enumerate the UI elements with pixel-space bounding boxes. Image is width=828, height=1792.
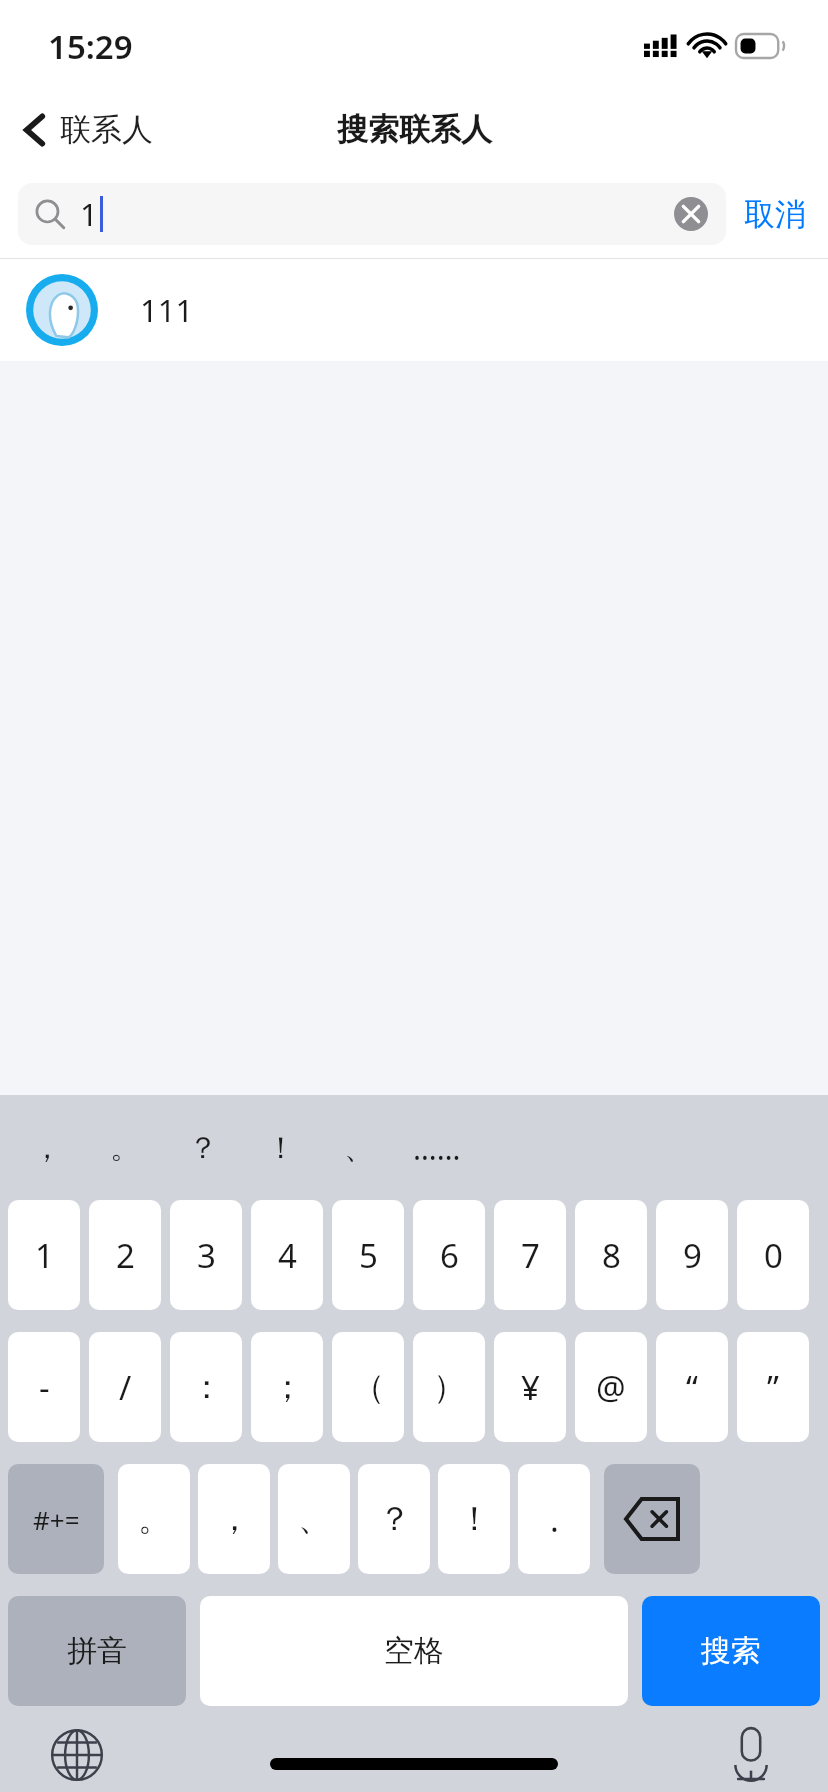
staticText: 3 xyxy=(197,1233,216,1278)
button[interactable]: 、 xyxy=(278,1464,350,1574)
button[interactable]: . xyxy=(518,1464,590,1574)
button[interactable]: 9 xyxy=(656,1200,728,1310)
button[interactable]: 。 xyxy=(118,1464,190,1574)
staticText: 取消 xyxy=(744,195,806,234)
staticText: ） xyxy=(433,1366,466,1408)
staticText: （ xyxy=(352,1366,385,1408)
button[interactable]: 4 xyxy=(251,1200,323,1310)
staticText: 9 xyxy=(683,1233,702,1278)
button[interactable]: ¥ xyxy=(494,1332,566,1442)
staticText: 7 xyxy=(521,1233,540,1278)
button[interactable]: 5 xyxy=(332,1200,404,1310)
staticText: 、 xyxy=(298,1498,331,1540)
staticText: 联系人 xyxy=(60,110,153,149)
staticText: 拼音 xyxy=(67,1632,127,1670)
button[interactable]: Clear text xyxy=(672,195,710,233)
staticText: @ xyxy=(596,1365,626,1410)
staticText: 。 xyxy=(138,1498,171,1540)
staticText: ¥ xyxy=(521,1365,540,1410)
button[interactable]: Switch keyboard xyxy=(46,1724,108,1786)
staticText: 5 xyxy=(359,1233,378,1278)
button[interactable]: - xyxy=(8,1332,80,1442)
button[interactable]: 拼音 xyxy=(8,1596,186,1706)
button[interactable]: 0 xyxy=(737,1200,809,1310)
button[interactable]: ， xyxy=(198,1464,270,1574)
button[interactable]: ？ xyxy=(358,1464,430,1574)
button[interactable]: 。 xyxy=(86,1104,164,1192)
button[interactable]: 8 xyxy=(575,1200,647,1310)
button[interactable]: 空格 xyxy=(200,1596,628,1706)
button[interactable]: ： xyxy=(170,1332,242,1442)
staticText: …… xyxy=(413,1128,461,1169)
button[interactable]: ！ xyxy=(438,1464,510,1574)
button[interactable]: 、 xyxy=(320,1104,398,1192)
staticText: 15:29 xyxy=(48,24,133,69)
staticText: ” xyxy=(767,1365,779,1410)
button[interactable]: 3 xyxy=(170,1200,242,1310)
button[interactable]: ？ xyxy=(164,1104,242,1192)
staticText: 搜索 xyxy=(701,1632,761,1670)
button[interactable]: ） xyxy=(413,1332,485,1442)
button[interactable]: / xyxy=(89,1332,161,1442)
staticText: . xyxy=(550,1497,559,1542)
button[interactable]: 111 xyxy=(0,259,828,361)
button[interactable]: 联系人 xyxy=(0,102,169,157)
staticText: ！ xyxy=(266,1129,296,1167)
staticText: ： xyxy=(190,1366,223,1408)
staticText: 8 xyxy=(602,1233,621,1278)
button[interactable]: 取消 xyxy=(726,187,810,242)
button[interactable]: 1 xyxy=(8,1200,80,1310)
staticText: 2 xyxy=(116,1233,135,1278)
staticText: ！ xyxy=(458,1498,491,1540)
button[interactable]: 1 xyxy=(18,183,726,245)
staticText: 1 xyxy=(35,1233,54,1278)
button[interactable]: “ xyxy=(656,1332,728,1442)
staticText: ， xyxy=(218,1498,251,1540)
staticText: ； xyxy=(271,1366,304,1408)
staticText: 空格 xyxy=(384,1632,444,1670)
button[interactable]: ” xyxy=(737,1332,809,1442)
staticText: 6 xyxy=(440,1233,459,1278)
staticText: 、 xyxy=(344,1129,374,1167)
button[interactable]: @ xyxy=(575,1332,647,1442)
staticText: / xyxy=(119,1365,132,1410)
staticText: 4 xyxy=(278,1233,297,1278)
button[interactable]: …… xyxy=(398,1104,476,1192)
staticText: 1 xyxy=(80,193,98,235)
button[interactable]: ； xyxy=(251,1332,323,1442)
button[interactable]: 2 xyxy=(89,1200,161,1310)
staticText: ， xyxy=(32,1129,62,1167)
button[interactable]: 搜索 xyxy=(642,1596,820,1706)
staticText: “ xyxy=(686,1365,698,1410)
button[interactable]: Voice input xyxy=(720,1724,782,1786)
button[interactable]: Backspace xyxy=(604,1464,700,1574)
staticText: 0 xyxy=(764,1233,783,1278)
staticText: #+= xyxy=(33,1502,80,1537)
staticText: - xyxy=(39,1365,50,1410)
button[interactable]: 6 xyxy=(413,1200,485,1310)
staticText: 111 xyxy=(140,289,194,331)
button[interactable]: ， xyxy=(8,1104,86,1192)
staticText: ？ xyxy=(188,1129,218,1167)
staticText: 搜索联系人 xyxy=(337,110,492,149)
staticText: 。 xyxy=(110,1129,140,1167)
button[interactable]: 7 xyxy=(494,1200,566,1310)
staticText: ？ xyxy=(378,1498,411,1540)
button[interactable]: #+= xyxy=(8,1464,104,1574)
button[interactable]: （ xyxy=(332,1332,404,1442)
button[interactable]: ！ xyxy=(242,1104,320,1192)
